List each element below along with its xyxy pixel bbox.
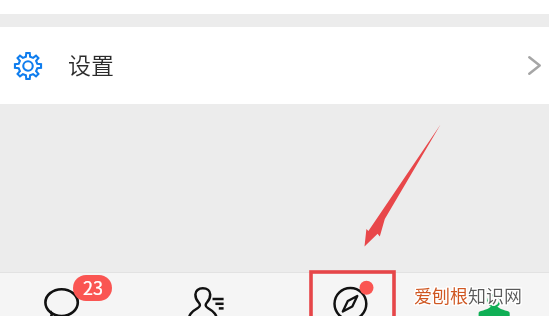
staticText: 爱刨根知识网 xyxy=(414,283,522,309)
button[interactable]: Contacts xyxy=(137,272,274,316)
button[interactable]: 设置 xyxy=(0,27,549,104)
staticText: 爱刨根知识网 xyxy=(413,282,521,308)
staticText: 爱刨根 xyxy=(414,282,468,308)
staticText: 爱刨根知识网 xyxy=(415,281,523,307)
staticText: 设置 xyxy=(68,47,114,80)
staticText: 爱刨根知识网 xyxy=(415,282,523,308)
staticText: 爱刨根知识网 xyxy=(413,281,521,307)
button[interactable]: Me xyxy=(411,272,549,316)
staticText: 爱刨根知识网 xyxy=(413,283,521,309)
staticText: 知识网 xyxy=(468,282,522,308)
staticText: 爱刨根知识网 xyxy=(415,283,523,309)
button[interactable]: Chats, 23 unread xyxy=(0,272,137,316)
button[interactable]: Discover xyxy=(274,272,411,316)
staticText: 23 xyxy=(83,275,103,300)
other: Open settings xyxy=(528,56,541,75)
staticText: 爱刨根知识网 xyxy=(414,281,522,307)
